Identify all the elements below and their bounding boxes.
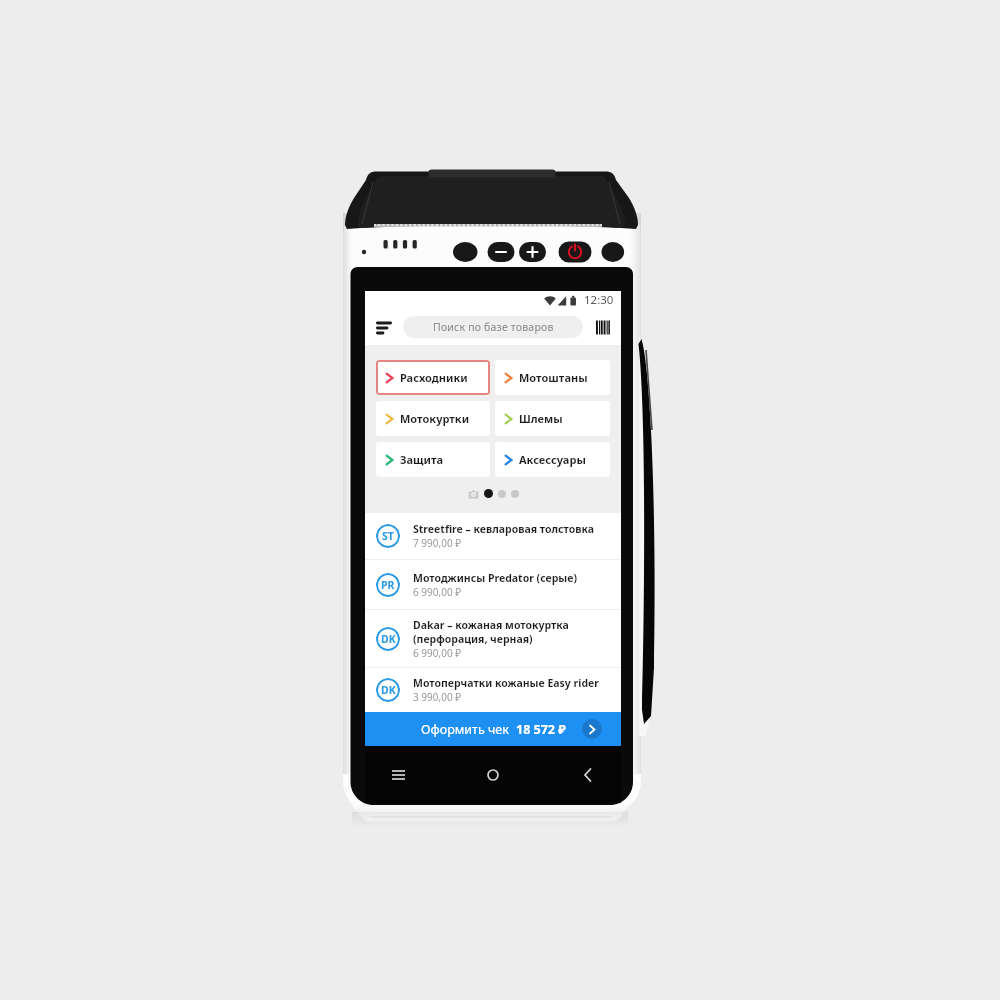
button[interactable]: Back — [568, 755, 608, 795]
button[interactable]: Scan barcode — [593, 317, 613, 337]
button[interactable]: Оформить чек — [365, 712, 621, 746]
staticText: Поиск по базе товаров — [433, 320, 554, 334]
staticText: PR — [381, 578, 395, 592]
staticText: ST — [382, 529, 394, 543]
staticText: 7 990,00 ₽ — [413, 536, 462, 550]
button[interactable]: Page 3 — [511, 490, 519, 498]
staticText: Расходники — [400, 370, 468, 385]
staticText: Мотоштаны — [519, 370, 588, 385]
button[interactable]: Page 2 — [498, 490, 506, 498]
staticText: DK — [381, 632, 396, 646]
staticText: 3 990,00 ₽ — [413, 690, 462, 704]
button[interactable]: Мотоштаны — [495, 360, 610, 395]
staticText: Шлемы — [519, 411, 563, 426]
staticText: (перфорация, черная) — [413, 632, 533, 646]
button[interactable]: Recent apps — [378, 755, 418, 795]
button[interactable]: Page 1 — [484, 489, 493, 498]
staticText: 18 572 ₽ — [516, 721, 566, 738]
staticText: Аксессуары — [519, 452, 586, 467]
button[interactable]: Расходники — [376, 360, 490, 395]
staticText: 6 990,00 ₽ — [413, 646, 462, 660]
button[interactable]: Home — [473, 755, 513, 795]
staticText: Streetfire – кевларовая толстовка — [413, 522, 595, 536]
button[interactable]: Menu — [374, 317, 394, 337]
staticText: Мотоперчатки кожаные Easy rider — [413, 676, 599, 690]
button[interactable]: Scan with camera — [468, 489, 479, 499]
staticText: Мотокуртки — [400, 411, 470, 426]
button[interactable]: Поиск по базе товаров — [403, 316, 583, 338]
button[interactable]: DK — [365, 668, 621, 712]
staticText: Оформить чек — [421, 721, 509, 738]
staticText: Dakar – кожаная мотокуртка — [413, 618, 569, 632]
staticText: 12:30 — [584, 292, 614, 308]
button[interactable]: Аксессуары — [495, 442, 610, 477]
button[interactable]: DK — [365, 610, 621, 667]
button[interactable]: PR — [365, 560, 621, 609]
button[interactable]: Мотокуртки — [376, 401, 490, 436]
staticText: DK — [381, 683, 396, 697]
staticText: 6 990,00 ₽ — [413, 585, 462, 599]
button[interactable]: Шлемы — [495, 401, 610, 436]
staticText: Мотоджинсы Predator (серые) — [413, 571, 578, 585]
button[interactable]: Proceed — [582, 719, 602, 739]
staticText: Защита — [400, 452, 444, 467]
button[interactable]: ST — [365, 513, 621, 559]
button[interactable]: Защита — [376, 442, 490, 477]
